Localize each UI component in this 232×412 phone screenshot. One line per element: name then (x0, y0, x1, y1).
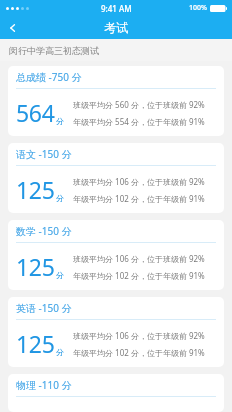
staticText: 100% (189, 3, 207, 13)
staticText: 英语 -150 分 (16, 301, 72, 315)
staticText: 125 (16, 174, 55, 205)
staticText: 班级平均分 106 分，位于班级前 92% (73, 176, 205, 187)
button[interactable]: 英语 -150 分 (8, 297, 224, 367)
button[interactable]: 闵行中学高三初态测试 (0, 39, 232, 61)
button[interactable]: 返回 (0, 16, 26, 39)
button[interactable]: 总成绩 -750 分 (8, 66, 224, 136)
staticText: 分 (56, 116, 64, 126)
button[interactable]: 物理 -110 分 (8, 374, 224, 412)
staticText: 班级平均分 106 分，位于班级前 92% (73, 253, 205, 264)
staticText: 语文 -150 分 (16, 147, 72, 161)
staticText: 数学 -150 分 (16, 224, 72, 238)
staticText: 班级平均分 106 分，位于班级前 92% (73, 330, 205, 341)
staticText: 年级平均分 102 分，位于年级前 91% (73, 347, 205, 358)
staticText: 年级平均分 554 分，位于年级前 91% (73, 116, 205, 127)
staticText: 总成绩 -750 分 (16, 70, 82, 84)
button[interactable]: 语文 -150 分 (8, 143, 224, 213)
staticText: 125 (16, 328, 55, 359)
staticText: 9:41 AM (101, 3, 132, 14)
staticText: 年级平均分 102 分，位于年级前 91% (73, 270, 205, 281)
staticText: 年级平均分 102 分，位于年级前 91% (73, 193, 205, 204)
staticText: 564 (16, 97, 55, 128)
staticText: 分 (56, 270, 64, 280)
staticText: 125 (16, 251, 55, 282)
staticText: 闵行中学高三初态测试 (9, 45, 99, 56)
staticText: 物理 -110 分 (16, 378, 72, 392)
staticText: 分 (56, 347, 64, 357)
staticText: 考试 (104, 20, 128, 35)
staticText: 班级平均分 560 分，位于班级前 92% (73, 99, 205, 110)
staticText: 分 (56, 193, 64, 203)
button[interactable]: 数学 -150 分 (8, 220, 224, 290)
